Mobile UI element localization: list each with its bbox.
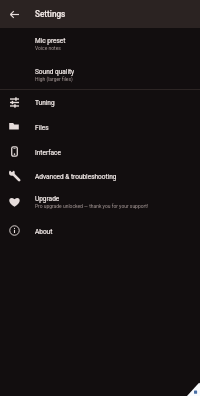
button[interactable]: Interface — [0, 140, 200, 165]
staticText: Voice notes — [35, 45, 61, 51]
button[interactable]: Files — [0, 115, 200, 140]
button[interactable]: Tuning — [0, 90, 200, 115]
staticText: Tuning — [35, 99, 55, 107]
staticText: Settings — [35, 9, 66, 19]
button[interactable]: Upgrade — [0, 188, 200, 216]
staticText: Files — [35, 124, 49, 132]
button[interactable]: Mic preset — [0, 28, 200, 59]
button[interactable]: About — [0, 219, 200, 244]
staticText: Mic preset — [35, 37, 66, 45]
staticText: Sound quality — [35, 68, 75, 76]
button[interactable]: Advanced & troubleshooting — [0, 164, 200, 189]
staticText: Interface — [35, 149, 61, 157]
button[interactable]: Back — [0, 0, 28, 28]
staticText: Upgrade — [35, 195, 60, 203]
staticText: High (larger files) — [35, 76, 73, 82]
staticText: About — [35, 228, 53, 236]
staticText: Advanced & troubleshooting — [35, 173, 117, 181]
staticText: Pro upgrade unlocked — thank you for you… — [35, 203, 149, 209]
button[interactable]: Sound quality — [0, 59, 200, 90]
